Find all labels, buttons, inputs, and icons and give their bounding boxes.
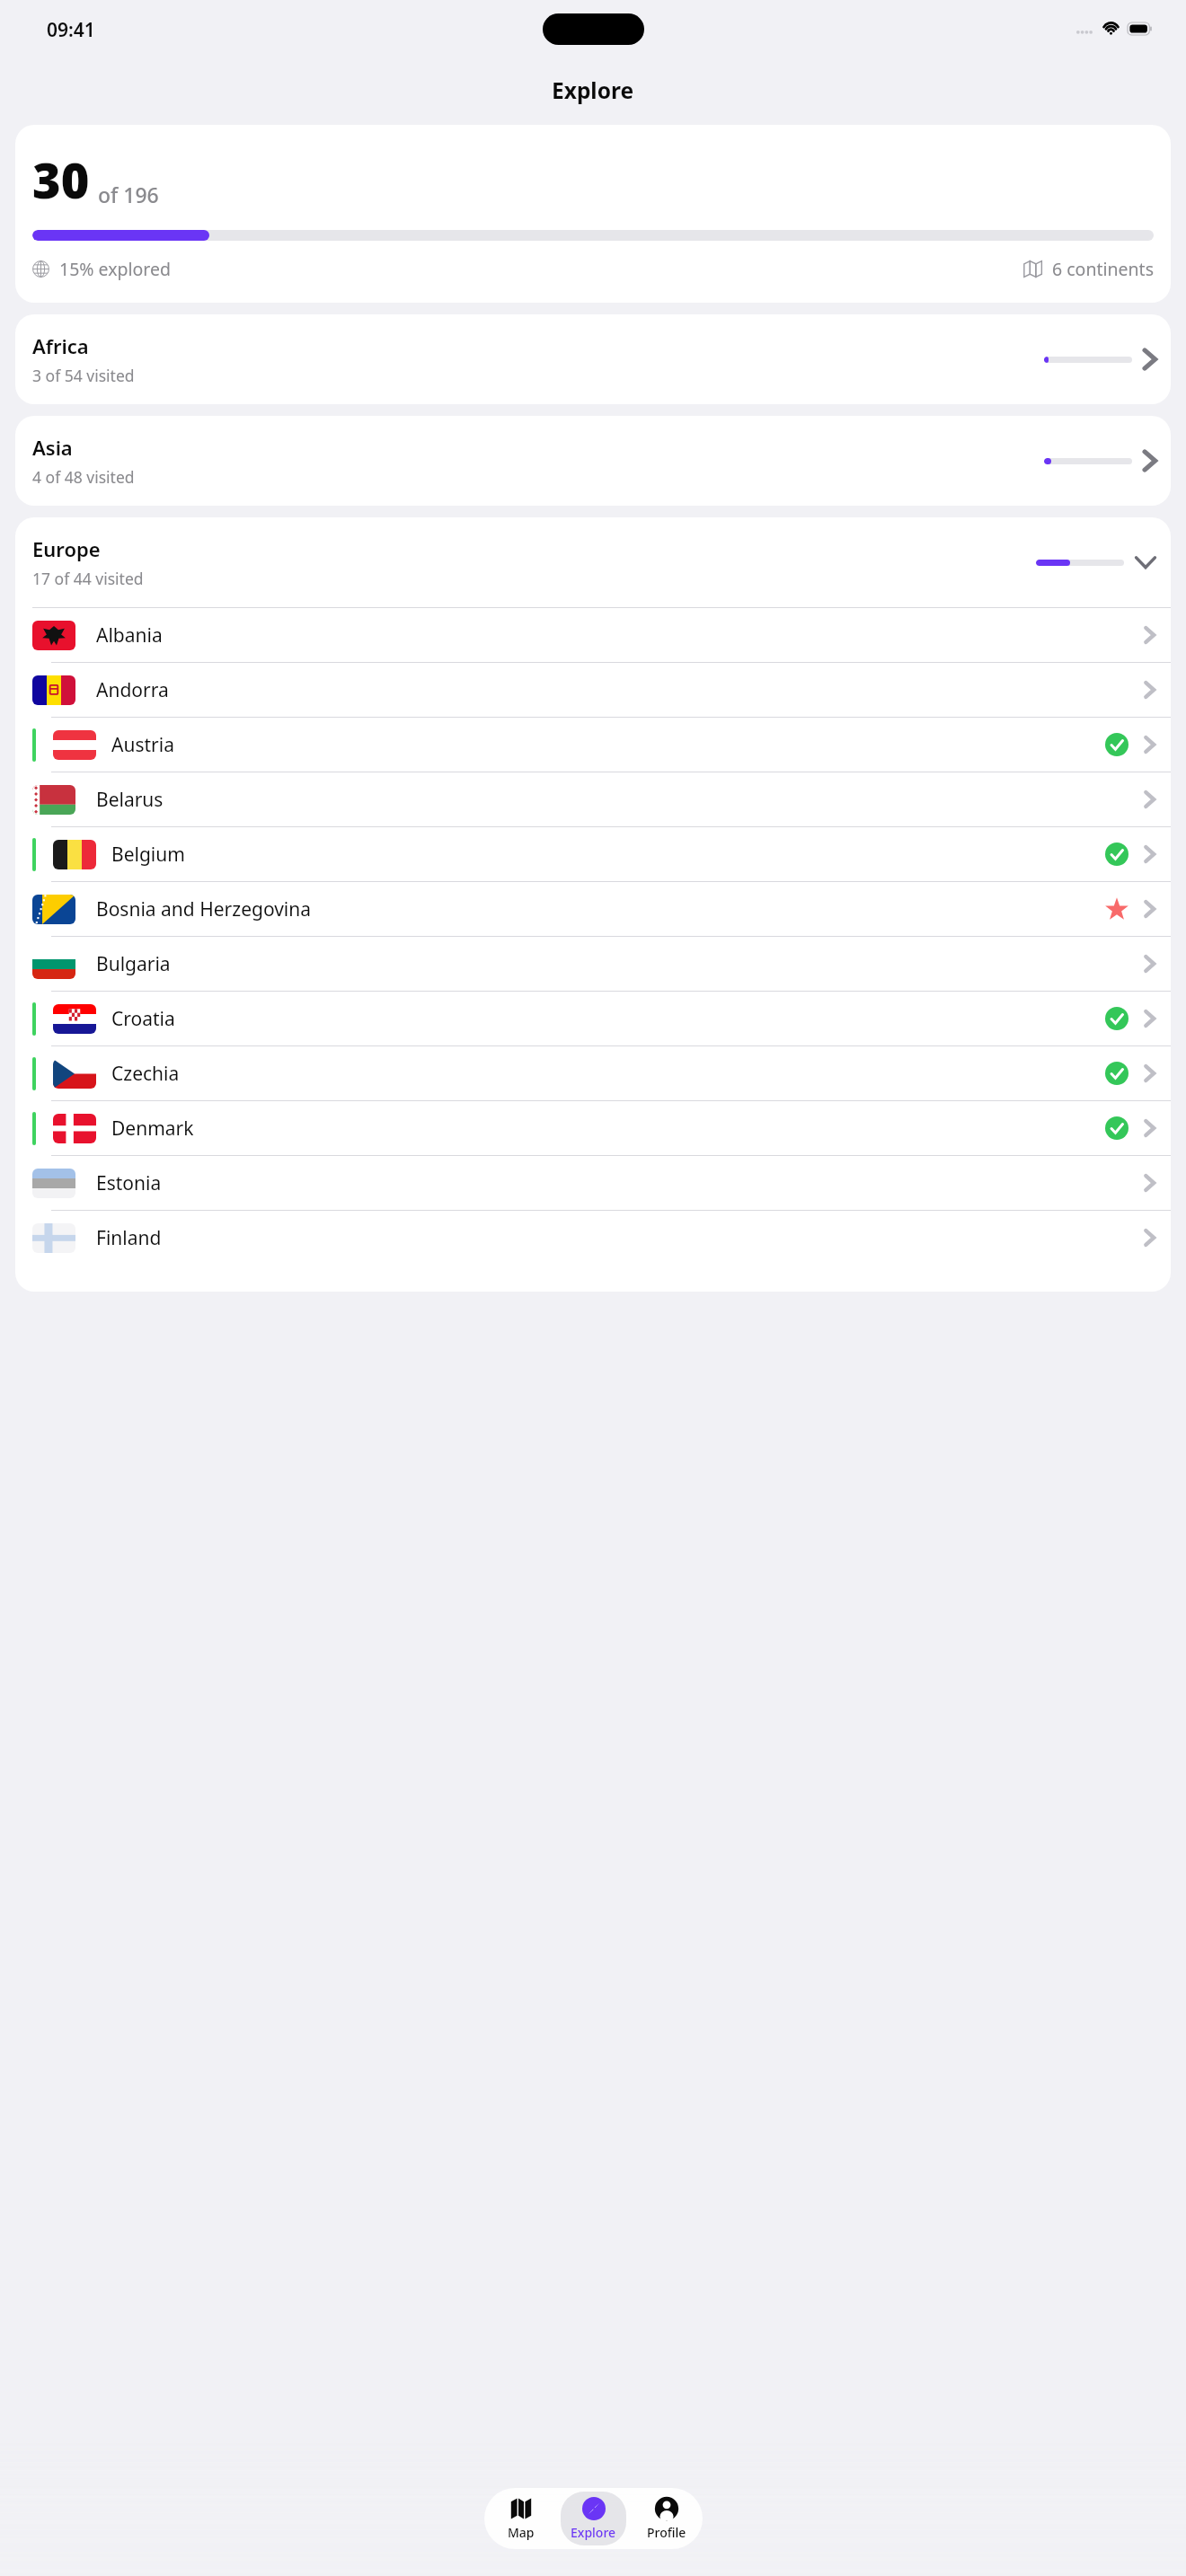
staticText: Bulgaria	[96, 951, 171, 977]
button[interactable]: 30	[15, 125, 1171, 303]
staticText: Asia	[32, 434, 73, 461]
staticText: Belgium	[111, 842, 185, 868]
staticText: Africa	[32, 332, 89, 359]
staticText: Profile	[647, 2524, 686, 2541]
staticText: Andorra	[96, 677, 169, 703]
button[interactable]: Map	[488, 2492, 553, 2545]
other: Expand Asia	[1142, 448, 1157, 473]
staticText: Map	[508, 2524, 535, 2541]
staticText: Explore	[552, 75, 634, 105]
staticText: 09:41	[47, 17, 95, 43]
other: Visited	[1105, 733, 1128, 756]
button[interactable]: Profile	[633, 2492, 699, 2545]
button[interactable]: Bosnia and Herzegovina	[15, 882, 1171, 936]
staticText: Estonia	[96, 1170, 162, 1196]
other: Visited	[1105, 1007, 1128, 1030]
staticText: Finland	[96, 1225, 162, 1251]
button[interactable]: Belgium	[15, 827, 1171, 881]
other: Visited	[1105, 842, 1128, 866]
other: Visited	[1105, 1116, 1128, 1140]
button[interactable]: Denmark	[15, 1101, 1171, 1155]
button[interactable]: Bulgaria	[15, 937, 1171, 991]
other: Visited	[1105, 1062, 1128, 1085]
button[interactable]: Africa	[15, 314, 1171, 404]
staticText: Albania	[96, 622, 163, 648]
staticText: of 196	[98, 181, 159, 208]
button[interactable]: Czechia	[15, 1046, 1171, 1100]
staticText: Denmark	[111, 1116, 194, 1142]
staticText: Bosnia and Herzegovina	[96, 896, 312, 922]
button[interactable]: Europe	[15, 517, 1171, 607]
staticText: Austria	[111, 732, 174, 758]
button[interactable]: Belarus	[15, 772, 1171, 826]
button[interactable]: Andorra	[15, 663, 1171, 717]
staticText: Explore	[571, 2524, 616, 2541]
button[interactable]: Austria	[15, 718, 1171, 772]
staticText: 4 of 48 visited	[32, 466, 135, 488]
staticText: 15% explored	[59, 257, 171, 281]
staticText: 6 continents	[1052, 257, 1154, 281]
staticText: 17 of 44 visited	[32, 568, 144, 589]
button[interactable]: Explore	[561, 2492, 626, 2545]
staticText: Belarus	[96, 787, 164, 813]
staticText: Croatia	[111, 1006, 175, 1032]
button[interactable]: Estonia	[15, 1156, 1171, 1210]
staticText: Europe	[32, 535, 101, 562]
other: Wishlist	[1105, 897, 1128, 921]
button[interactable]: Asia	[15, 416, 1171, 506]
staticText: 30	[32, 146, 90, 213]
other: Expand Africa	[1142, 347, 1157, 372]
button[interactable]: Finland	[15, 1211, 1171, 1265]
button[interactable]: Albania	[15, 608, 1171, 662]
staticText: 3 of 54 visited	[32, 365, 135, 386]
other: Collapse Europe	[1134, 555, 1157, 569]
staticText: Czechia	[111, 1061, 180, 1087]
button[interactable]: Croatia	[15, 992, 1171, 1045]
